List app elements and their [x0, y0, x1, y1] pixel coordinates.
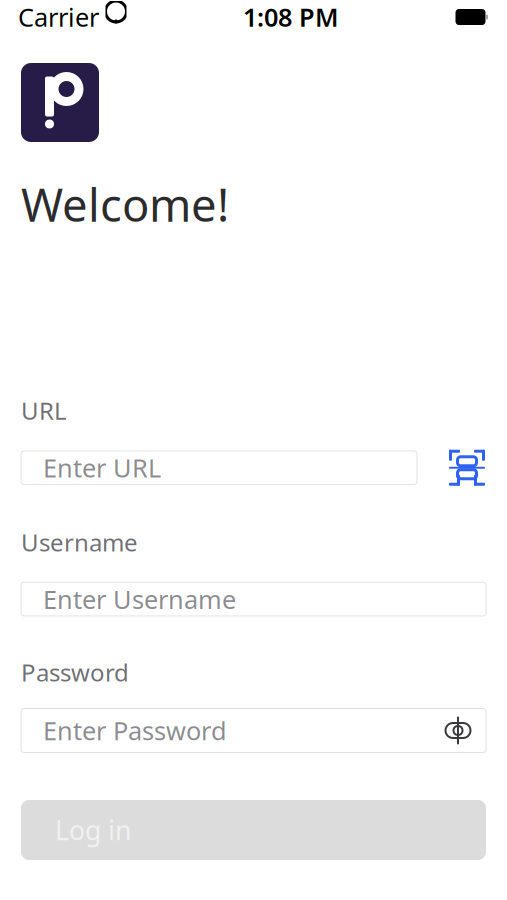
staticText: Password [21, 656, 129, 688]
staticText: Log in [55, 812, 131, 848]
staticText: Enter Password [43, 714, 227, 747]
staticText: Username [21, 526, 138, 558]
button[interactable]: Show password [436, 708, 480, 752]
staticText: Enter URL [43, 451, 161, 484]
staticText: Welcome! [21, 174, 229, 234]
staticText: Enter Username [43, 582, 236, 616]
staticText: 1:08 PM [243, 0, 339, 34]
staticText: Carrier [18, 0, 99, 34]
button[interactable]: Scan QR code [439, 440, 495, 496]
staticText: URL [21, 394, 67, 426]
